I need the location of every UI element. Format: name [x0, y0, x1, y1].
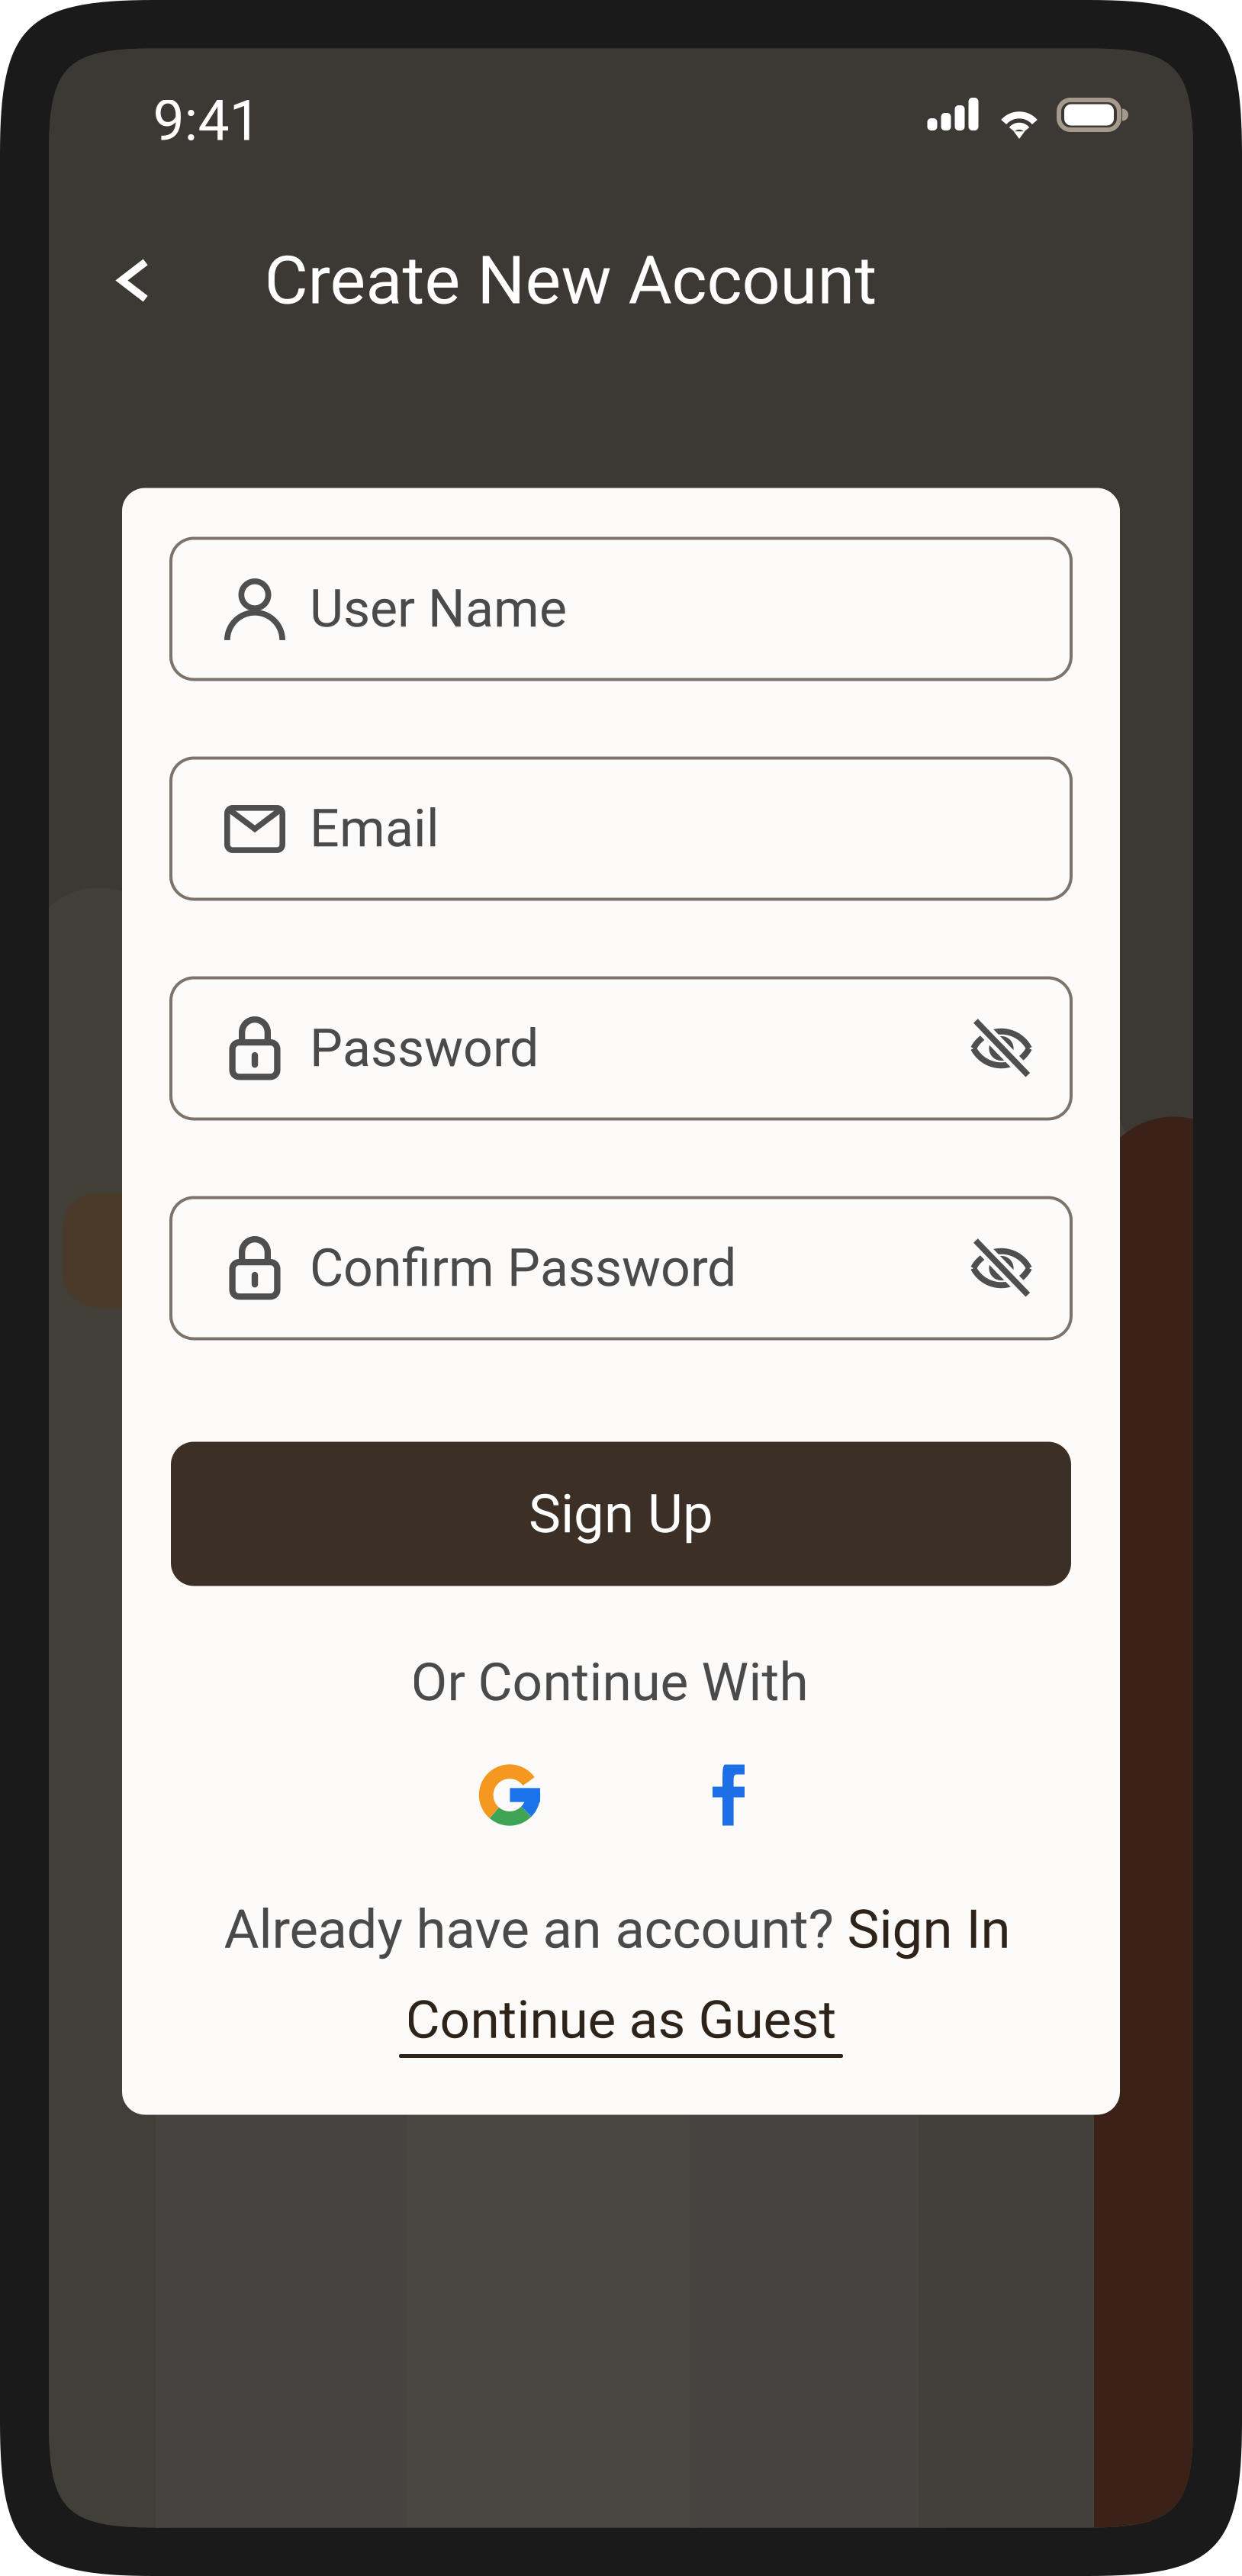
button[interactable]: Continue as Guest [399, 1992, 843, 2058]
staticText: Or Continue With [411, 1651, 808, 1713]
button[interactable]: Sign Up [171, 1442, 1071, 1586]
staticText: Confirm Password [310, 1238, 736, 1299]
staticText: Sign In [847, 1898, 1010, 1961]
staticText: User Name [310, 579, 567, 639]
staticText: Sign Up [529, 1482, 713, 1545]
button[interactable]: Continue with Google [461, 1746, 558, 1844]
button[interactable]: Already have an account? [224, 1895, 1010, 1964]
button[interactable]: Continue with Facebook [713, 1765, 774, 1826]
staticText: Create New Account [264, 241, 877, 320]
staticText: Password [310, 1018, 539, 1079]
staticText: 9:41 [153, 88, 261, 154]
staticText: Already have an account? [224, 1898, 847, 1961]
staticText: Email [310, 798, 439, 859]
button[interactable]: Back [88, 235, 179, 325]
staticText: Continue as Guest [405, 1989, 837, 2051]
